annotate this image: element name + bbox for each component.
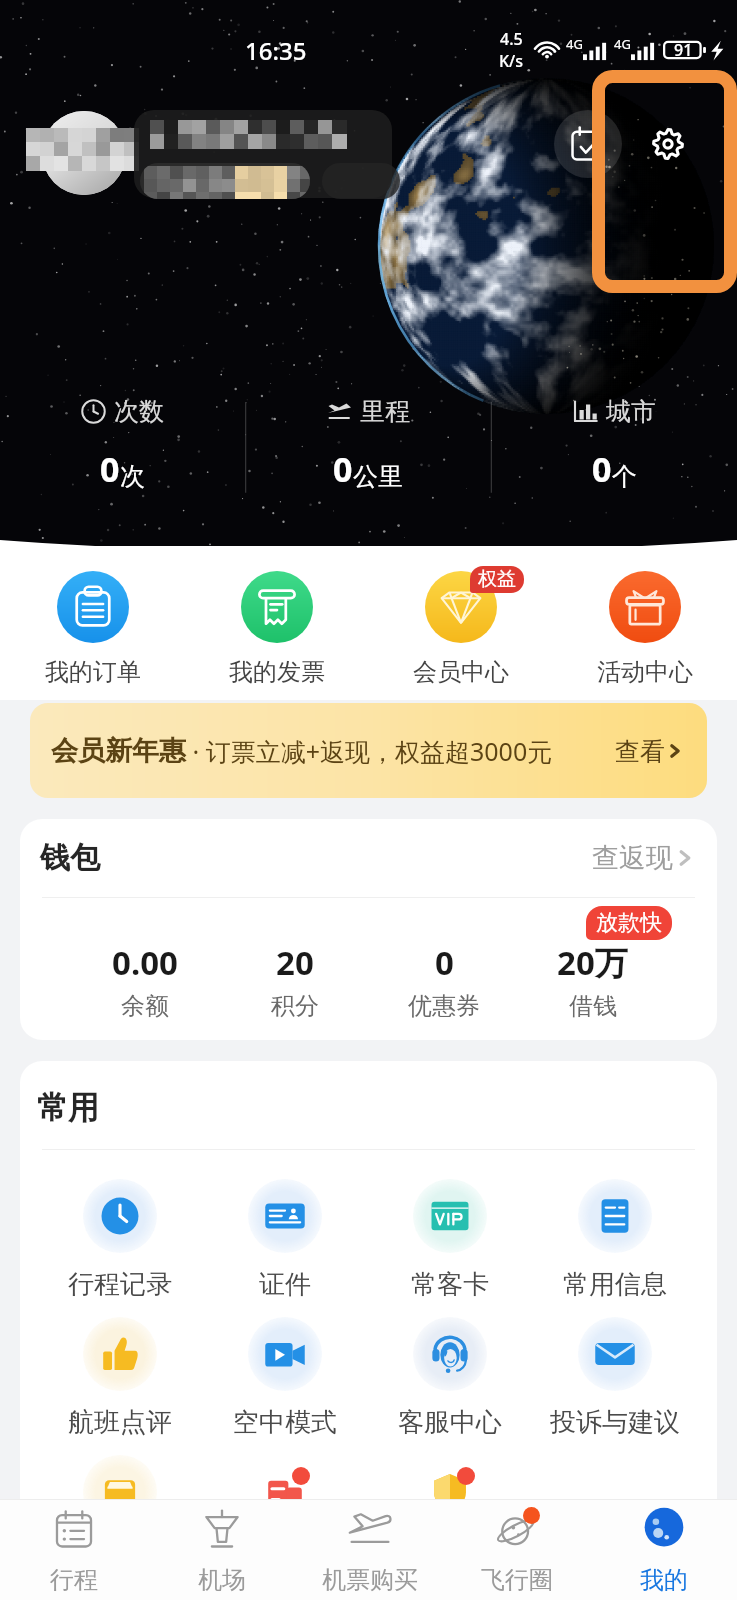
staticText: 城市 [606, 396, 656, 427]
button[interactable]: 投诉与建议 [532, 1317, 697, 1439]
staticText: 0 [435, 940, 454, 985]
button[interactable]: 安全中心 [367, 1455, 532, 1540]
button[interactable]: 飞行圈 [443, 1500, 590, 1600]
staticText: 16:35 [245, 34, 307, 67]
staticText: 优惠券 [408, 991, 480, 1021]
button[interactable]: 次数 [0, 396, 245, 506]
button[interactable]: 会员新年惠 [30, 703, 707, 798]
staticText: K/s [499, 50, 524, 72]
staticText: 钱包 [40, 839, 100, 877]
button[interactable]: 客服中心 [367, 1317, 532, 1439]
staticText: 我的订单 [45, 657, 141, 687]
staticText: 飞行圈 [481, 1565, 553, 1595]
button[interactable]: 个人资料 [26, 104, 400, 204]
staticText: 里程 [360, 396, 410, 427]
staticText: 公里 [353, 461, 403, 492]
staticText: 我的发票 [229, 657, 325, 687]
staticText: 借钱 [569, 991, 617, 1021]
staticText: 会员中心 [413, 657, 509, 687]
button[interactable]: 航班点评 [38, 1317, 202, 1439]
button[interactable]: 证件 [202, 1179, 367, 1301]
staticText: 投诉与建议 [550, 1406, 680, 1439]
button[interactable]: 0.00 [70, 940, 220, 1021]
button[interactable]: 活动中心 [553, 570, 737, 687]
staticText: 个 [612, 461, 637, 492]
staticText: 0 [333, 446, 353, 492]
staticText: 活动中心 [597, 657, 693, 687]
staticText: 权益 [478, 567, 516, 591]
staticText: 20 [276, 940, 314, 985]
button[interactable]: Settings [632, 108, 704, 180]
staticText: 机票购买 [322, 1565, 418, 1595]
staticText: 余额 [121, 991, 169, 1021]
staticText: 4G [614, 35, 631, 53]
button[interactable]: 行程记录 [38, 1179, 202, 1301]
button[interactable]: 我的发票 [185, 570, 369, 687]
staticText: 空中模式 [233, 1406, 337, 1439]
staticText: 证件 [259, 1268, 311, 1301]
button[interactable]: 城市 [491, 396, 737, 506]
button[interactable]: 行程 [0, 1500, 148, 1600]
staticText: 行程记录 [68, 1268, 172, 1301]
button[interactable]: 20万 [518, 940, 667, 1021]
button[interactable]: 机场 [148, 1500, 296, 1600]
staticText: 0.00 [112, 940, 178, 985]
staticText: 客服中心 [398, 1406, 502, 1439]
staticText: 20万 [557, 940, 628, 985]
staticText: 航班点评 [68, 1406, 172, 1439]
staticText: 次 [120, 461, 145, 492]
button[interactable]: 权益 [369, 570, 553, 687]
staticText: 4.5 [500, 28, 523, 50]
button[interactable]: 里程 [245, 396, 491, 506]
button[interactable]: Pro 服务 [38, 1455, 202, 1544]
staticText: 查看 [615, 736, 665, 767]
staticText: 常用 [37, 1088, 99, 1127]
staticText: 91 [674, 39, 693, 61]
button[interactable]: 查返现 [592, 841, 697, 875]
staticText: 机场 [198, 1565, 246, 1595]
staticText: 4G [566, 35, 583, 53]
staticText: 我的 [640, 1565, 688, 1595]
button[interactable]: 机票购买 [296, 1500, 443, 1600]
staticText: 会员新年惠 [51, 734, 186, 768]
staticText: 积分 [271, 991, 319, 1021]
staticText: 常客卡 [411, 1268, 489, 1301]
staticText: 放款快 [596, 909, 662, 937]
button[interactable]: Calendar [554, 110, 622, 178]
button[interactable]: 空中模式 [202, 1317, 367, 1439]
button[interactable]: 常客卡 [367, 1179, 532, 1301]
button[interactable]: 消息中心 [202, 1455, 367, 1540]
button[interactable]: 我的订单 [0, 570, 185, 687]
button[interactable]: 常用信息 [532, 1179, 697, 1301]
staticText: 常用信息 [563, 1268, 667, 1301]
button[interactable]: 20 [220, 940, 369, 1021]
staticText: 次数 [114, 396, 164, 427]
staticText: 0 [100, 446, 120, 492]
button[interactable]: 0 [369, 940, 518, 1021]
staticText: 查返现 [592, 841, 673, 875]
staticText: 0 [592, 446, 612, 492]
staticText: · 订票立减+返现，权益超3000元 [186, 734, 553, 768]
staticText: 行程 [50, 1565, 98, 1595]
button[interactable]: 我的 [590, 1500, 737, 1600]
